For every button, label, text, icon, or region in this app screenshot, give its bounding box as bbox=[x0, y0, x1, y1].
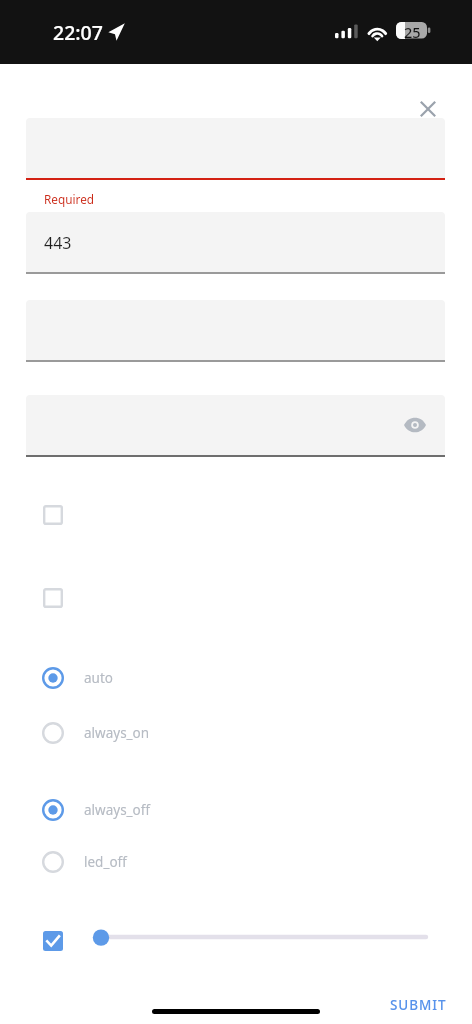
staticText: 443 bbox=[44, 232, 72, 254]
button[interactable]: Unchecked bbox=[33, 495, 73, 535]
staticText: 25 bbox=[404, 22, 421, 39]
button[interactable]: Brightness slider bbox=[85, 921, 436, 953]
button[interactable]: always_off bbox=[22, 790, 452, 830]
button[interactable]: Unchecked bbox=[33, 578, 73, 618]
staticText: Required bbox=[44, 191, 95, 207]
staticText: led_off bbox=[84, 853, 127, 871]
button[interactable]: always_on bbox=[22, 713, 452, 753]
button[interactable]: Show password bbox=[400, 410, 430, 440]
staticText: SUBMIT bbox=[390, 996, 447, 1014]
button[interactable]: SUBMIT bbox=[376, 989, 461, 1021]
button[interactable]: Checked bbox=[33, 921, 73, 961]
button[interactable]: led_off bbox=[22, 842, 452, 882]
staticText: auto bbox=[84, 669, 113, 687]
button[interactable]: auto bbox=[22, 658, 452, 698]
staticText: always_off bbox=[84, 801, 151, 819]
staticText: always_on bbox=[84, 724, 150, 742]
button[interactable]: Show password bbox=[26, 395, 445, 455]
button[interactable]: 443 bbox=[26, 212, 445, 272]
button[interactable]: Close bbox=[410, 91, 446, 127]
staticText: 22:07 bbox=[53, 19, 103, 46]
